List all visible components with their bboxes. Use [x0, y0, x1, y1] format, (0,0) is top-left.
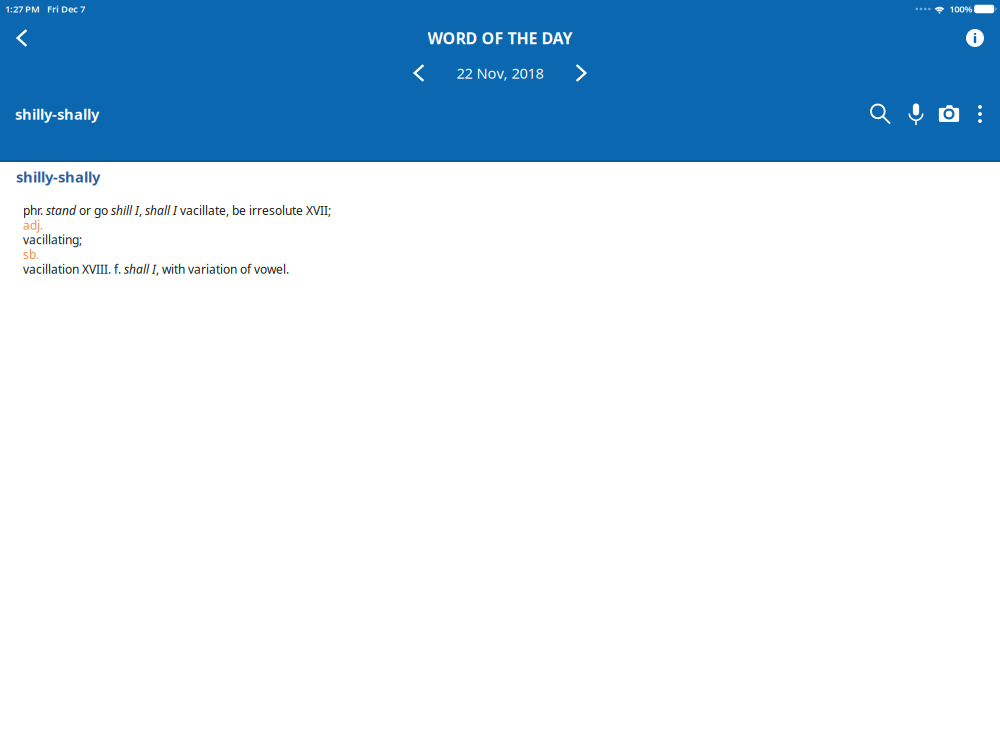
staticText: shilly-shally	[15, 104, 99, 124]
button[interactable]: Search	[862, 90, 898, 138]
staticText: shilly-shally	[16, 167, 100, 186]
staticText: phr. stand or go shill I, shall I vacill…	[23, 202, 331, 218]
staticText: 22 Nov, 2018	[456, 63, 543, 83]
staticText: vacillating;	[23, 232, 82, 248]
staticText: Fri Dec 7	[47, 3, 85, 15]
button[interactable]: Voice search	[898, 90, 934, 138]
button[interactable]: More options	[964, 90, 996, 138]
staticText: vacillation XVIII. f. shall I, with vari…	[23, 261, 289, 277]
button[interactable]: Previous day	[399, 58, 439, 88]
staticText: 1:27 PM	[5, 3, 40, 15]
button[interactable]: Back	[0, 18, 44, 58]
button[interactable]: Camera search	[934, 90, 964, 138]
staticText: WORD OF THE DAY	[427, 27, 572, 49]
staticText: 100%	[949, 3, 972, 15]
staticText: adj.	[23, 217, 43, 233]
staticText: sb.	[23, 246, 39, 262]
button[interactable]: Information	[950, 18, 1000, 58]
button[interactable]: Next day	[561, 58, 601, 88]
